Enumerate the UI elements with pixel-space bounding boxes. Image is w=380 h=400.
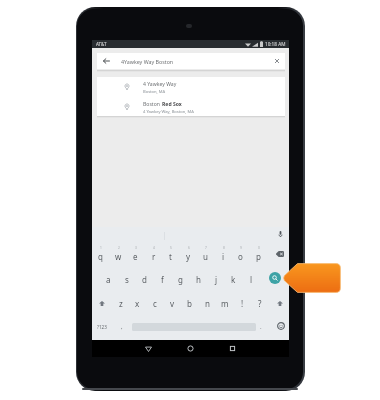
staticText: ?123 — [97, 324, 107, 330]
button[interactable]: g — [172, 270, 189, 288]
button[interactable]: h — [190, 270, 207, 288]
button[interactable]: ? — [251, 294, 268, 312]
button[interactable]: 4 — [145, 245, 162, 263]
staticText: . — [260, 323, 262, 331]
button[interactable]: Comma — [116, 320, 128, 334]
staticText: w — [115, 251, 122, 262]
button[interactable]: ?123 — [92, 320, 112, 334]
staticText: b — [187, 298, 192, 309]
staticText: 0 — [258, 246, 260, 250]
staticText: y — [186, 251, 191, 262]
button[interactable]: d — [136, 270, 153, 288]
staticText: f — [161, 274, 164, 285]
button[interactable]: x — [129, 294, 146, 312]
button[interactable]: Back — [99, 54, 113, 68]
button[interactable]: Period — [255, 320, 267, 334]
staticText: v — [170, 298, 175, 309]
button[interactable]: v — [164, 294, 181, 312]
staticText: 4 Yawkey Way, Boston, MA — [143, 109, 194, 115]
staticText: h — [196, 274, 201, 285]
staticText: 2 — [118, 246, 120, 250]
button[interactable]: s — [118, 270, 135, 288]
staticText: 9 — [240, 246, 242, 250]
staticText: 1 — [100, 246, 102, 250]
staticText: u — [203, 251, 208, 262]
staticText: m — [221, 298, 229, 309]
button[interactable]: 3 — [127, 245, 144, 263]
staticText: l — [250, 274, 253, 285]
button[interactable]: Search — [269, 272, 281, 284]
staticText: n — [205, 298, 210, 309]
button[interactable]: b — [181, 294, 198, 312]
staticText: 4 — [153, 246, 155, 250]
staticText: 5 — [170, 246, 172, 250]
staticText: , — [121, 323, 123, 331]
staticText: o — [238, 251, 243, 262]
staticText: j — [215, 274, 218, 285]
staticText: 7 — [205, 246, 207, 250]
button[interactable]: l — [243, 270, 260, 288]
button[interactable]: n — [199, 294, 216, 312]
button[interactable]: Recent apps — [222, 340, 242, 357]
button[interactable]: 9 — [232, 245, 249, 263]
button[interactable]: Boston — [97, 97, 285, 117]
staticText: s — [125, 274, 129, 285]
staticText: k — [231, 274, 236, 285]
button[interactable]: Shift — [271, 294, 288, 312]
staticText: c — [153, 298, 157, 309]
staticText: Boston — [143, 101, 162, 108]
button[interactable]: Back — [138, 340, 158, 357]
button[interactable]: Shift — [93, 294, 110, 312]
button[interactable]: Backspace — [271, 245, 288, 263]
staticText: AT&T — [96, 41, 107, 47]
staticText: 4Yawkey Way Boston — [121, 58, 174, 65]
staticText: ? — [258, 298, 262, 309]
button[interactable]: 8 — [215, 245, 232, 263]
button[interactable]: Emoji — [274, 319, 288, 333]
staticText: q — [98, 251, 103, 262]
button[interactable]: 0 — [250, 245, 267, 263]
staticText: Red Sox — [162, 101, 182, 108]
button[interactable]: a — [100, 270, 117, 288]
button[interactable]: c — [146, 294, 163, 312]
button[interactable]: Voice input — [275, 229, 285, 239]
staticText: i — [222, 251, 225, 262]
staticText: 3 — [135, 246, 137, 250]
button[interactable]: Clear search — [270, 54, 284, 68]
staticText: d — [142, 274, 147, 285]
staticText: 4 Yawkey Way — [143, 81, 177, 88]
button[interactable]: 7 — [197, 245, 214, 263]
staticText: t — [169, 251, 172, 262]
button[interactable]: j — [208, 270, 225, 288]
button[interactable]: f — [154, 270, 171, 288]
button[interactable]: Back — [97, 53, 285, 69]
staticText: 8 — [223, 246, 225, 250]
staticText: g — [178, 274, 183, 285]
button[interactable]: z — [112, 294, 129, 312]
button[interactable]: m — [216, 294, 233, 312]
button[interactable]: 2 — [110, 245, 127, 263]
staticText: p — [256, 251, 261, 262]
staticText: 10:18 AM — [265, 41, 286, 47]
staticText: z — [119, 298, 123, 309]
staticText: x — [135, 298, 140, 309]
button[interactable]: 6 — [180, 245, 197, 263]
staticText: ! — [241, 298, 244, 309]
button[interactable]: 4 Yawkey Way — [97, 77, 285, 97]
staticText: e — [133, 251, 138, 262]
button[interactable]: Home — [180, 340, 200, 357]
staticText: 6 — [188, 246, 190, 250]
staticText: r — [152, 251, 156, 262]
button[interactable]: ! — [234, 294, 251, 312]
staticText: a — [106, 274, 111, 285]
staticText: Boston, MA — [143, 89, 166, 95]
button[interactable]: 1 — [92, 245, 109, 263]
button[interactable]: k — [225, 270, 242, 288]
button[interactable]: 5 — [162, 245, 179, 263]
